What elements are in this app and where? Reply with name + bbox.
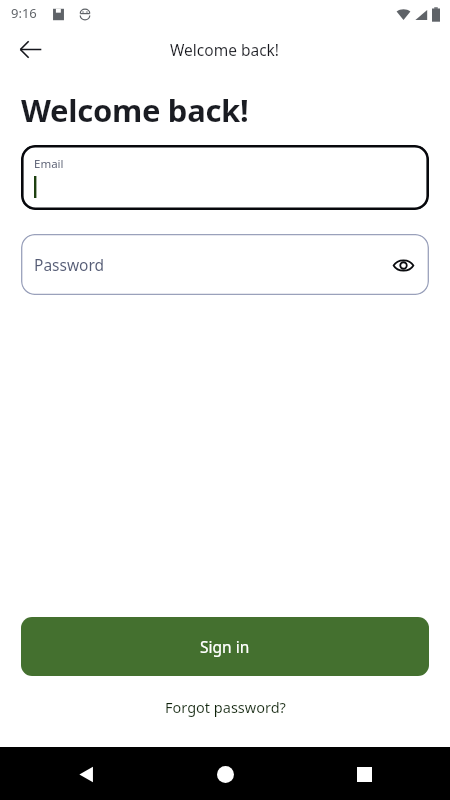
button[interactable]: Forgot password? xyxy=(155,692,296,722)
staticText: Forgot password? xyxy=(165,697,286,717)
staticText: Welcome back! xyxy=(21,89,249,131)
staticText: 9:16 xyxy=(11,4,37,22)
button[interactable]: Recents xyxy=(344,754,384,794)
staticText: Password xyxy=(34,254,105,275)
button[interactable]: Sign in xyxy=(21,617,429,676)
staticText: Welcome back! xyxy=(170,39,280,60)
button[interactable]: Back xyxy=(8,28,52,70)
button[interactable]: Back xyxy=(66,754,106,794)
staticText: Sign in xyxy=(200,636,250,657)
button[interactable]: Password xyxy=(21,234,429,295)
button[interactable]: Show password xyxy=(384,246,422,284)
staticText: Email xyxy=(34,156,64,172)
button[interactable]: Email xyxy=(21,145,429,210)
button[interactable]: Home xyxy=(205,754,245,794)
